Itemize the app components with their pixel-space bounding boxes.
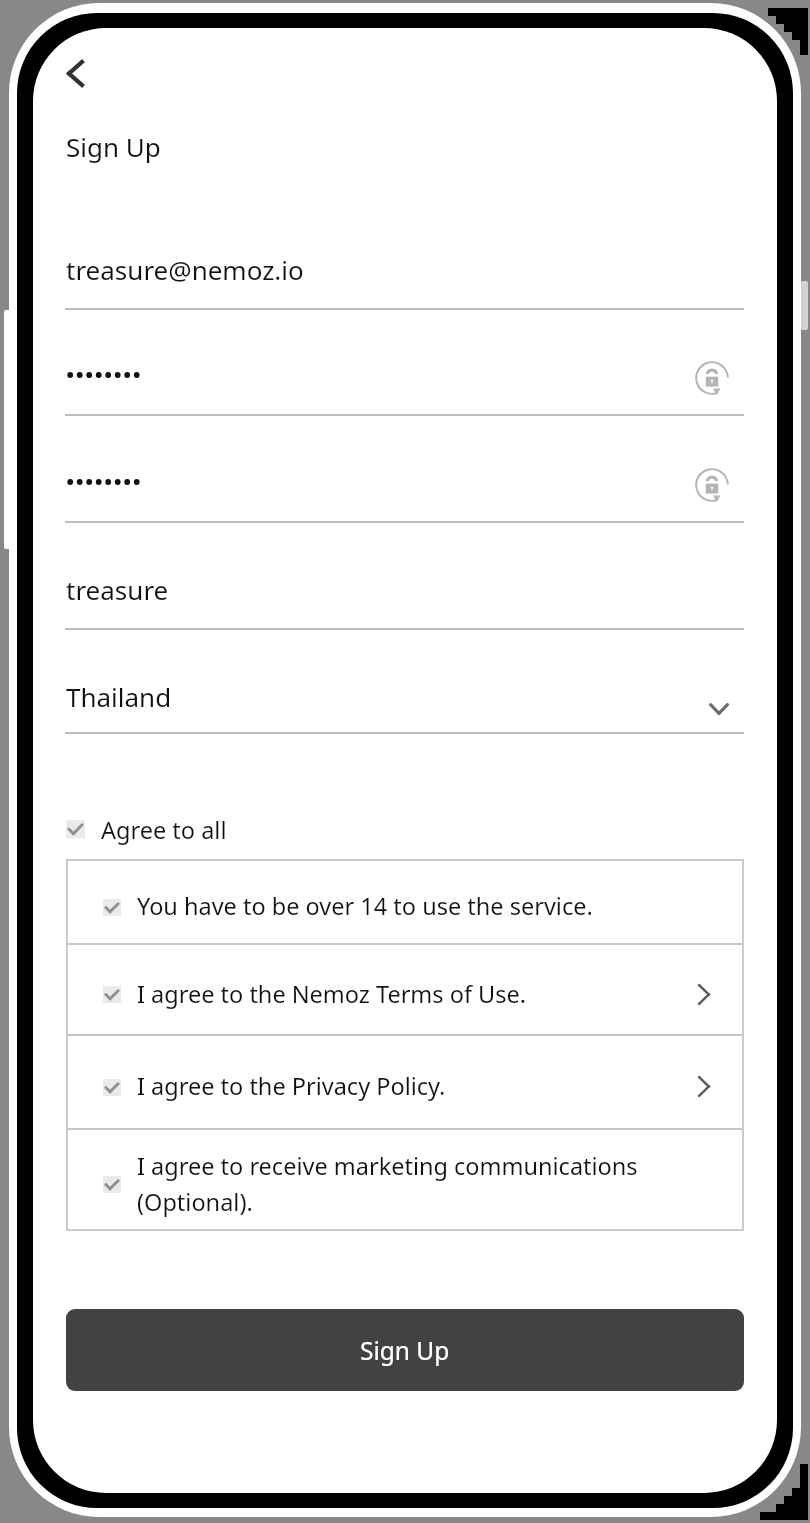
staticText: I agree to receive marketing communicati… bbox=[137, 1150, 638, 1218]
staticText: Thailand bbox=[66, 679, 172, 714]
button[interactable]: Back bbox=[43, 45, 107, 101]
button[interactable]: I agree to the Nemoz Terms of Use. bbox=[67, 944, 743, 1035]
staticText: I agree to the Privacy Policy. bbox=[137, 1070, 446, 1102]
staticText: You have to be over 14 to use the servic… bbox=[137, 890, 593, 922]
staticText: Agree to all bbox=[101, 814, 227, 846]
button[interactable]: Sign Up bbox=[66, 1309, 744, 1391]
button[interactable]: Open details bbox=[684, 974, 724, 1014]
button[interactable]: You have to be over 14 to use the servic… bbox=[67, 860, 743, 944]
staticText: Sign Up bbox=[66, 129, 161, 164]
button[interactable]: I agree to the Privacy Policy. bbox=[67, 1035, 743, 1129]
staticText: treasure bbox=[66, 572, 169, 607]
button[interactable]: Show password bbox=[684, 457, 740, 513]
staticText: I agree to the Nemoz Terms of Use. bbox=[137, 978, 527, 1010]
button[interactable]: Agree to all bbox=[60, 806, 350, 854]
button[interactable]: Select country bbox=[691, 681, 747, 737]
staticText: Sign Up bbox=[360, 1334, 450, 1367]
staticText: treasure@nemoz.io bbox=[66, 252, 304, 287]
button[interactable]: Open details bbox=[684, 1066, 724, 1106]
button[interactable]: I agree to receive marketing communicati… bbox=[67, 1129, 743, 1230]
button[interactable]: Show password bbox=[684, 350, 740, 406]
